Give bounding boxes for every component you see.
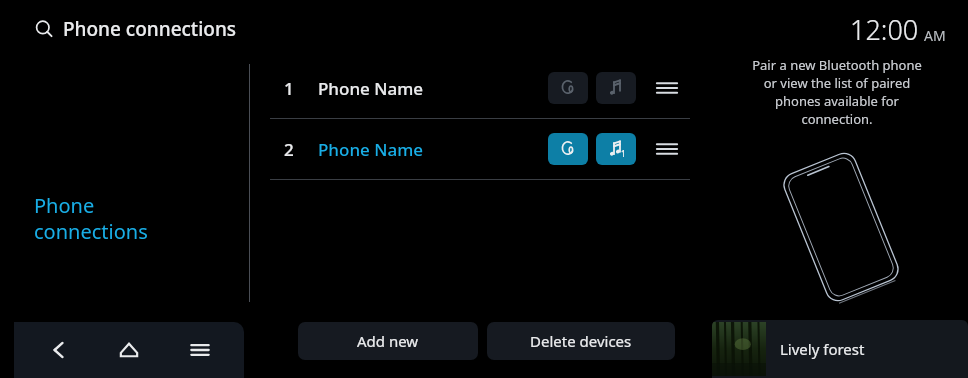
button[interactable]: 1 bbox=[270, 58, 690, 118]
staticText: Phone Name bbox=[318, 77, 424, 100]
button[interactable]: Options bbox=[650, 132, 684, 166]
staticText: Phone connections bbox=[63, 16, 237, 42]
staticText: Add new bbox=[357, 331, 419, 351]
button[interactable]: Back bbox=[33, 324, 85, 376]
button[interactable]: Options bbox=[650, 71, 684, 105]
button[interactable]: 2 bbox=[270, 119, 690, 179]
button[interactable]: Connect bbox=[596, 72, 636, 104]
staticText: Pair a new Bluetooth phone or view the l… bbox=[752, 56, 922, 128]
button[interactable]: Phone connections bbox=[0, 58, 240, 378]
button[interactable]: Connect bbox=[548, 72, 588, 104]
button[interactable]: Delete devices bbox=[487, 322, 675, 360]
staticText: Lively forest bbox=[780, 339, 865, 359]
staticText: 2 bbox=[284, 138, 294, 161]
staticText: 12:00 bbox=[850, 11, 919, 48]
button[interactable]: Lively forest bbox=[712, 320, 968, 378]
staticText: 1 bbox=[621, 148, 626, 159]
staticText: Phone connections bbox=[34, 192, 148, 244]
other: Search bbox=[34, 19, 54, 39]
button[interactable]: Home bbox=[103, 324, 155, 376]
button[interactable]: Add new bbox=[298, 322, 478, 360]
button[interactable]: Connected bbox=[596, 133, 636, 165]
staticText: 1 bbox=[284, 77, 294, 100]
button[interactable]: Search bbox=[30, 12, 241, 46]
staticText: AM bbox=[924, 26, 946, 45]
staticText: Delete devices bbox=[530, 331, 632, 351]
staticText: Phone Name bbox=[318, 138, 424, 161]
button[interactable]: Connected bbox=[548, 133, 588, 165]
button[interactable]: Menu bbox=[174, 324, 226, 376]
